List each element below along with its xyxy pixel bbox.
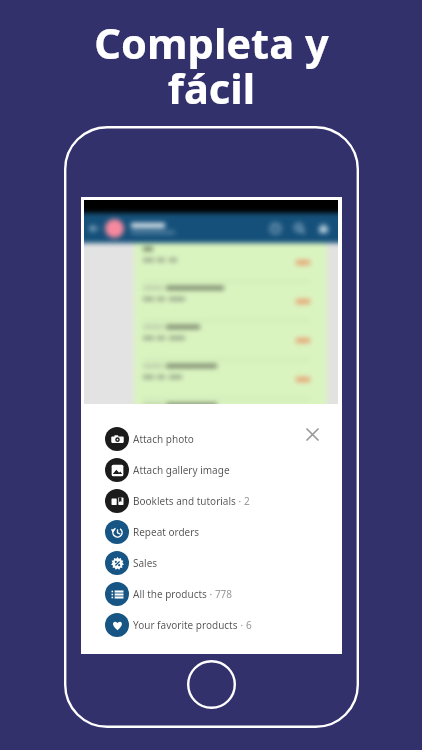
staticText: Completa y fácil [94,15,329,117]
staticText: Sales [133,556,158,570]
staticText: Repeat orders [133,525,200,539]
staticText: · 2 [236,494,250,508]
button[interactable]: Your favorite products [84,609,338,640]
staticText: Your favorite products [133,618,238,632]
button[interactable]: Repeat orders [84,516,338,547]
button[interactable]: Booklets and tutorials [84,485,338,516]
button[interactable]: Attach gallery image [84,454,338,485]
staticText: · 6 [238,618,252,632]
button[interactable]: Sales [84,547,338,578]
staticText: Attach photo [133,432,194,446]
button[interactable]: Attach photo [84,423,338,454]
staticText: · 778 [207,587,233,601]
staticText: Attach gallery image [133,463,230,477]
staticText: All the products [133,587,207,601]
staticText: Booklets and tutorials [133,494,236,508]
button[interactable]: All the products [84,578,338,609]
button[interactable]: Close [299,421,325,447]
